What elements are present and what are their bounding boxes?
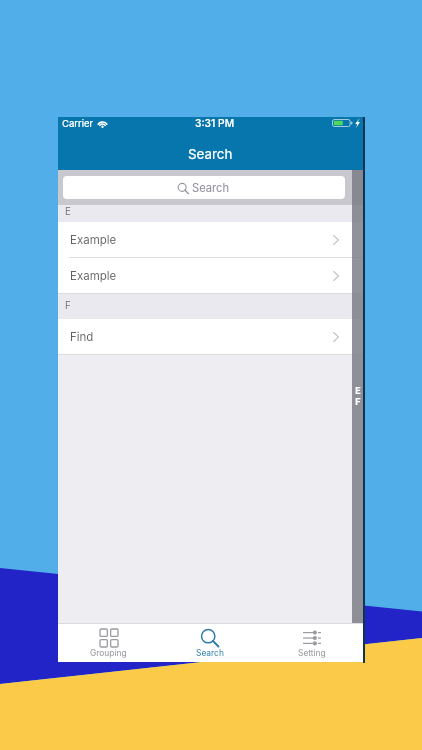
button[interactable]: Find (58, 319, 363, 354)
staticText: E (65, 206, 71, 218)
staticText: Find (70, 330, 94, 344)
staticText: E (355, 385, 361, 396)
staticText: Example (70, 269, 117, 283)
staticText: F (65, 300, 71, 312)
button[interactable]: Search (63, 176, 345, 199)
button[interactable]: Setting (261, 624, 363, 662)
staticText: Example (70, 233, 117, 247)
staticText: Search (192, 181, 230, 195)
button[interactable]: Example (58, 258, 363, 293)
staticText: Carrier (62, 118, 94, 129)
staticText: Search (196, 648, 224, 658)
button[interactable]: Section index (352, 170, 363, 623)
staticText: Grouping (90, 648, 127, 658)
button[interactable]: Search (159, 624, 261, 662)
staticText: Search (188, 146, 233, 162)
staticText: 3:31 PM (195, 117, 235, 129)
staticText: Setting (298, 648, 326, 658)
staticText: F (355, 396, 361, 407)
button[interactable]: Example (58, 222, 363, 257)
button[interactable]: Grouping (58, 624, 159, 662)
